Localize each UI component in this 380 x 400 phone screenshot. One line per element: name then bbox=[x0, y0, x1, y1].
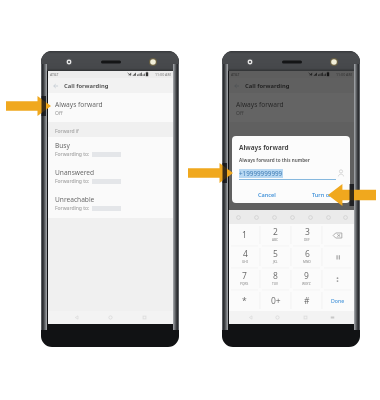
staticText: Off bbox=[55, 110, 63, 117]
staticText: JKL bbox=[273, 260, 278, 264]
staticText: Unreachable bbox=[55, 195, 95, 204]
staticText: 1 bbox=[242, 229, 247, 241]
staticText: AT&T bbox=[50, 72, 59, 77]
staticText: Call forwarding bbox=[245, 82, 290, 90]
staticText: ABC bbox=[272, 238, 279, 242]
staticText: WXYZ bbox=[302, 282, 311, 286]
button[interactable]: Keyboard option 2 bbox=[265, 210, 283, 224]
staticText: Always forward bbox=[239, 143, 289, 152]
button[interactable]: Navigate up bbox=[50, 80, 62, 92]
button[interactable]: Recents bbox=[300, 312, 311, 323]
staticText: Forwarding to: bbox=[55, 205, 90, 212]
button[interactable]: Keyboard option 6 bbox=[337, 210, 354, 224]
button[interactable]: 3 bbox=[291, 224, 322, 246]
staticText: PQRS bbox=[240, 282, 249, 286]
staticText: Always forward to this number bbox=[239, 157, 310, 163]
button[interactable]: Pause bbox=[322, 246, 353, 268]
button[interactable]: 5 bbox=[260, 246, 291, 268]
staticText: Forwarding to: bbox=[55, 151, 90, 158]
button[interactable]: 6 bbox=[291, 246, 322, 268]
button[interactable]: Back bbox=[71, 312, 82, 323]
staticText: Forward if bbox=[55, 128, 79, 135]
button[interactable]: Keyboard option 4 bbox=[301, 210, 319, 224]
staticText: 3 bbox=[305, 226, 310, 238]
staticText: MNO bbox=[303, 260, 311, 264]
staticText: # bbox=[304, 295, 310, 307]
button[interactable]: Turn on bbox=[310, 190, 335, 200]
button[interactable]: Backspace bbox=[322, 224, 353, 246]
staticText: Turn on bbox=[312, 191, 333, 199]
staticText: AT&T bbox=[231, 72, 240, 77]
button[interactable]: Keyboard bbox=[327, 312, 338, 323]
button[interactable]: # bbox=[291, 290, 322, 311]
button[interactable]: Wait bbox=[322, 268, 353, 290]
button[interactable]: 9 bbox=[291, 268, 322, 290]
staticText: Call forwarding bbox=[64, 82, 109, 90]
button[interactable]: 8 bbox=[260, 268, 291, 290]
button[interactable]: * bbox=[229, 290, 260, 311]
staticText: Busy bbox=[55, 141, 70, 150]
button[interactable]: Unreachable bbox=[48, 191, 173, 218]
button[interactable]: 4 bbox=[229, 246, 260, 268]
staticText: 0+ bbox=[271, 295, 281, 307]
staticText: 6 bbox=[305, 248, 310, 260]
staticText: 11:00 AM bbox=[336, 72, 352, 77]
staticText: Off bbox=[236, 110, 244, 117]
button[interactable]: 2 bbox=[260, 224, 291, 246]
staticText: Always forward bbox=[236, 100, 284, 109]
button[interactable]: Back bbox=[245, 312, 256, 323]
staticText: * bbox=[242, 295, 247, 307]
staticText: 8 bbox=[273, 270, 278, 282]
staticText: Cancel bbox=[258, 191, 276, 199]
staticText: 2 bbox=[273, 226, 278, 238]
button[interactable]: 0+ bbox=[260, 290, 291, 311]
button[interactable]: 7 bbox=[229, 268, 260, 290]
staticText: 11:00 AM bbox=[155, 72, 171, 77]
button[interactable]: Cancel bbox=[256, 190, 278, 200]
staticText: Always forward bbox=[55, 100, 103, 109]
button[interactable]: Always forward bbox=[48, 93, 173, 122]
button[interactable]: Always forward bbox=[229, 93, 354, 122]
button[interactable]: Home bbox=[272, 312, 283, 323]
button[interactable]: Done bbox=[322, 290, 353, 311]
staticText: Forwarding to: bbox=[55, 178, 90, 185]
staticText: Unanswered bbox=[55, 168, 95, 177]
button[interactable]: Keyboard option 0 bbox=[229, 210, 247, 224]
staticText: Done bbox=[331, 297, 345, 304]
button[interactable]: Keyboard option 5 bbox=[319, 210, 337, 224]
staticText: 5 bbox=[273, 248, 278, 260]
staticText: +19999999999 bbox=[239, 169, 283, 178]
button[interactable]: Pick contact bbox=[337, 169, 345, 177]
button[interactable]: Unanswered bbox=[48, 164, 173, 191]
button[interactable]: Keyboard option 1 bbox=[247, 210, 265, 224]
staticText: 9 bbox=[304, 270, 309, 282]
button[interactable]: 1 bbox=[229, 224, 260, 246]
staticText: DEF bbox=[304, 238, 310, 242]
button[interactable]: Recents bbox=[139, 312, 150, 323]
button[interactable]: Home bbox=[105, 312, 116, 323]
staticText: 7 bbox=[242, 270, 247, 282]
staticText: 4 bbox=[243, 248, 248, 260]
button[interactable]: Busy bbox=[48, 137, 173, 164]
staticText: GHI bbox=[242, 260, 248, 264]
staticText: TUV bbox=[272, 282, 279, 286]
button[interactable]: Keyboard option 3 bbox=[283, 210, 301, 224]
